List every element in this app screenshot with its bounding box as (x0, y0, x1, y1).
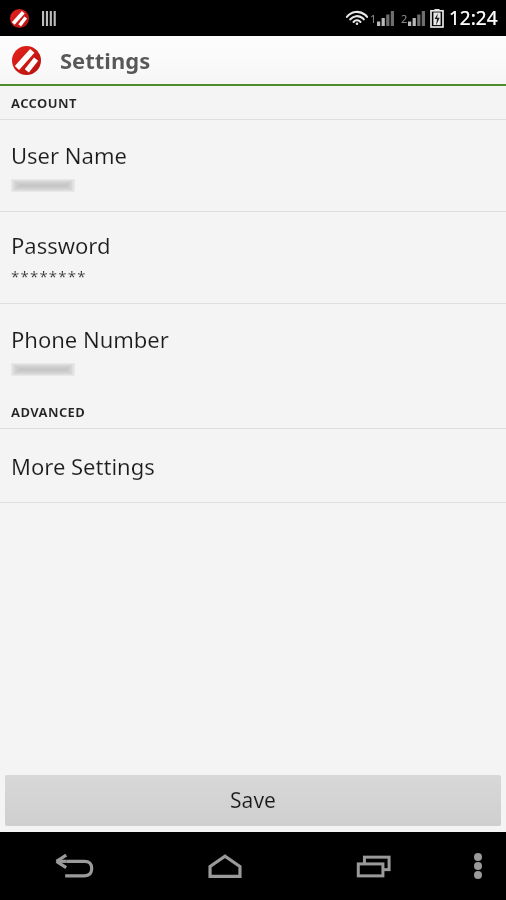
staticText: Phone Number (11, 324, 169, 354)
button[interactable]: Phone Number (0, 304, 506, 395)
button[interactable]: More options (450, 832, 506, 900)
staticText: 1 (370, 11, 377, 26)
button[interactable]: More Settings (0, 429, 506, 502)
button[interactable]: Home (150, 832, 300, 900)
button[interactable]: Back (0, 832, 150, 900)
staticText: ADVANCED (11, 403, 86, 421)
staticText: Settings (60, 45, 151, 75)
staticText: Save (230, 786, 276, 815)
button[interactable]: Save (5, 775, 501, 826)
button[interactable]: Password (0, 212, 506, 303)
staticText: 2 (401, 11, 408, 26)
staticText: ******** (11, 266, 87, 286)
button[interactable]: Recent apps (300, 832, 450, 900)
staticText: 12:24 (449, 5, 498, 31)
staticText: Password (11, 230, 111, 260)
staticText: ACCOUNT (11, 94, 77, 112)
staticText: More Settings (11, 451, 155, 481)
button[interactable]: User Name (0, 120, 506, 211)
staticText: User Name (11, 140, 127, 170)
